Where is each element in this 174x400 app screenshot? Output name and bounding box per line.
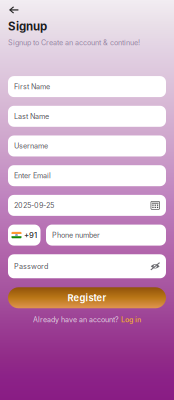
staticText: Already have an account?	[33, 315, 119, 324]
button[interactable]: First Name	[8, 76, 166, 97]
button[interactable]: Phone number	[46, 225, 166, 246]
button[interactable]: Password	[8, 254, 166, 278]
staticText: Signup to Create an account & continue!	[8, 38, 140, 47]
button[interactable]: Register	[8, 287, 166, 308]
button[interactable]: 2025-09-25	[8, 195, 166, 216]
staticText: Log in	[121, 315, 141, 324]
button[interactable]: Last Name	[8, 106, 166, 127]
staticText: Password	[14, 262, 48, 271]
staticText: 2025-09-25	[14, 201, 54, 210]
button[interactable]: Already have an account?	[0, 312, 174, 327]
staticText: Last Name	[14, 112, 49, 121]
button[interactable]: Enter Email	[8, 165, 166, 186]
staticText: Enter Email	[14, 171, 51, 180]
button[interactable]: Username	[8, 135, 166, 156]
staticText: Phone number	[52, 231, 100, 239]
staticText: Register	[67, 292, 106, 303]
staticText: +91	[24, 230, 37, 240]
button[interactable]: Back	[0, 0, 27, 18]
button[interactable]: +91	[8, 225, 40, 246]
staticText: First Name	[14, 82, 50, 91]
staticText: Signup	[8, 19, 47, 33]
staticText: Username	[14, 142, 48, 150]
